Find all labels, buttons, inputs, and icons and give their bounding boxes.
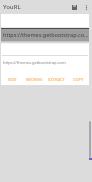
staticText: EDIT [8, 77, 17, 82]
button[interactable]: BROWSE [23, 75, 45, 83]
staticText: COPY [73, 77, 84, 82]
staticText: https://themes.getbootstrap.com [3, 31, 89, 38]
button[interactable]: EXTRACT [45, 75, 67, 83]
button[interactable]: Save [68, 1, 80, 13]
staticText: YouRL [3, 3, 68, 11]
button[interactable]: COPY [67, 75, 89, 83]
staticText: BROWSE [26, 77, 43, 82]
button[interactable]: https://themes.getbootstrap.com [1, 28, 89, 41]
staticText: https://themes.getbootstrap.com [3, 60, 66, 65]
button[interactable]: EDIT [1, 75, 23, 83]
button[interactable]: More options [80, 1, 92, 13]
staticText: EXTRACT [48, 77, 65, 82]
